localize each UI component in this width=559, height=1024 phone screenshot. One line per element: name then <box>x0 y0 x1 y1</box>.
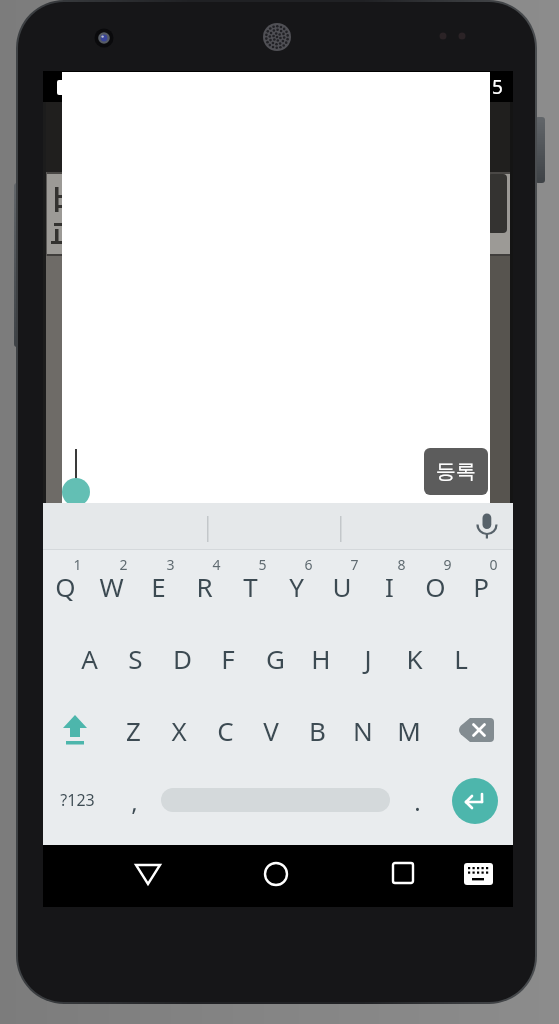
staticText: , <box>131 785 138 818</box>
staticText: Z <box>126 713 141 748</box>
button[interactable]: C <box>202 710 248 750</box>
button[interactable]: O <box>412 566 458 606</box>
button[interactable] <box>452 778 498 824</box>
button[interactable]: J <box>345 638 391 678</box>
button[interactable]: R <box>181 566 227 606</box>
button[interactable] <box>53 710 97 750</box>
staticText: 8 <box>397 555 406 574</box>
button[interactable]: F <box>205 638 251 678</box>
button[interactable]: P <box>458 566 504 606</box>
staticText: M <box>397 713 421 748</box>
staticText: V <box>263 713 279 748</box>
staticText: P <box>473 569 489 604</box>
button[interactable]: . <box>394 781 440 821</box>
button[interactable]: A <box>66 638 112 678</box>
button[interactable]: N <box>340 710 386 750</box>
staticText: ?123 <box>60 789 95 811</box>
button[interactable] <box>43 503 513 549</box>
staticText: G <box>266 641 285 676</box>
button[interactable] <box>456 854 500 896</box>
button[interactable]: E <box>135 566 181 606</box>
staticText: R <box>196 569 213 604</box>
button[interactable]: Z <box>110 710 156 750</box>
staticText: F <box>221 641 235 676</box>
staticText: 1 <box>73 555 82 574</box>
button[interactable]: T <box>227 566 273 606</box>
staticText: 2 <box>119 555 128 574</box>
button[interactable]: M <box>386 710 432 750</box>
staticText: D <box>173 641 192 676</box>
staticText: C <box>217 713 234 748</box>
staticText: 6 <box>304 555 313 574</box>
staticText: 5 <box>492 74 503 100</box>
button[interactable]: V <box>248 710 294 750</box>
button[interactable]: S <box>112 638 158 678</box>
staticText: 4 <box>212 555 221 574</box>
staticText: U <box>332 569 352 604</box>
button[interactable]: 등록 <box>424 448 488 495</box>
staticText: J <box>364 641 372 676</box>
button[interactable]: L <box>438 638 484 678</box>
staticText: 7 <box>350 555 359 574</box>
staticText: X <box>171 713 187 748</box>
staticText: T <box>243 569 258 604</box>
button[interactable] <box>381 853 425 897</box>
staticText: L <box>454 641 468 676</box>
button[interactable]: X <box>156 710 202 750</box>
button[interactable]: Y <box>273 566 319 606</box>
staticText: . <box>414 785 421 818</box>
button[interactable]: Q <box>42 566 88 606</box>
staticText: K <box>406 641 423 676</box>
button[interactable]: U <box>319 566 365 606</box>
staticText: H <box>311 641 331 676</box>
staticText: 5 <box>258 555 267 574</box>
staticText: 3 <box>166 555 175 574</box>
button[interactable] <box>456 710 500 750</box>
staticText: E <box>151 569 166 604</box>
staticText: Y <box>289 569 304 604</box>
staticText: W <box>99 569 124 604</box>
staticText: Q <box>55 569 76 604</box>
button[interactable]: K <box>391 638 437 678</box>
button[interactable]: G <box>252 638 298 678</box>
staticText: I <box>385 569 394 604</box>
button[interactable]: B <box>294 710 340 750</box>
button[interactable]: ?123 <box>55 780 99 820</box>
button[interactable]: W <box>88 566 134 606</box>
button[interactable] <box>126 853 170 897</box>
staticText: N <box>353 713 373 748</box>
staticText: 등록 <box>436 459 476 484</box>
button[interactable]: I <box>366 566 412 606</box>
button[interactable] <box>254 853 298 897</box>
staticText: A <box>81 641 98 676</box>
button[interactable] <box>43 549 513 845</box>
button[interactable]: D <box>159 638 205 678</box>
staticText: 9 <box>443 555 452 574</box>
staticText: S <box>128 641 143 676</box>
button[interactable]: , <box>111 781 157 821</box>
staticText: 0 <box>489 555 498 574</box>
staticText: B <box>309 713 326 748</box>
staticText: O <box>425 569 446 604</box>
button[interactable]: H <box>298 638 344 678</box>
